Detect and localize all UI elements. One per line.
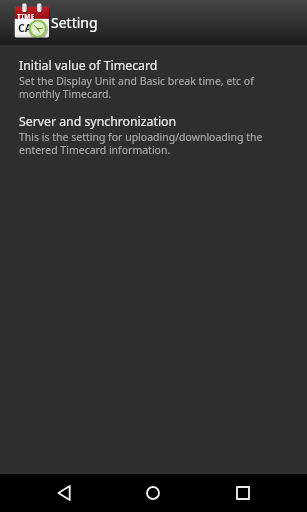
button[interactable]: Home	[130, 474, 176, 512]
staticText: TIME	[17, 12, 35, 21]
button[interactable]: Server and synchronization	[0, 101, 307, 157]
button[interactable]: Back	[41, 474, 87, 512]
staticText: This is the setting for uploading/downlo…	[19, 130, 288, 157]
staticText: Server and synchronization	[19, 113, 177, 130]
staticText: Set the Display Unit and Basic break tim…	[19, 74, 288, 101]
button[interactable]: Initial value of Timecard	[0, 45, 307, 101]
button[interactable]: Recent apps	[220, 474, 266, 512]
staticText: Initial value of Timecard	[19, 57, 158, 74]
staticText: CAL	[18, 21, 38, 35]
staticText: Setting	[51, 13, 98, 32]
